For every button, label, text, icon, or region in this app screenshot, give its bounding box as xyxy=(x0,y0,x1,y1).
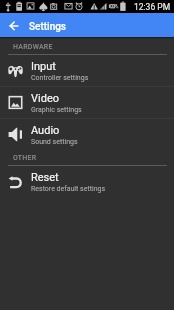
staticText: Audio xyxy=(31,124,60,137)
staticText: Reset xyxy=(31,171,59,184)
button[interactable]: Reset xyxy=(0,166,174,197)
staticText: 12:36 PM xyxy=(134,2,171,12)
button[interactable]: Audio xyxy=(0,119,174,150)
staticText: Graphic settings xyxy=(31,106,82,114)
staticText: HARDWARE xyxy=(13,43,53,51)
staticText: Settings xyxy=(29,21,67,33)
staticText: Controller settings xyxy=(31,74,89,82)
button[interactable]: Back xyxy=(0,13,26,37)
staticText: Sound settings xyxy=(31,138,78,146)
staticText: Input xyxy=(31,60,56,73)
staticText: OTHER xyxy=(13,154,37,162)
staticText: Video xyxy=(31,92,59,105)
staticText: Restore default settings xyxy=(31,185,106,193)
button[interactable]: Input xyxy=(0,55,174,86)
button[interactable]: Video xyxy=(0,87,174,118)
